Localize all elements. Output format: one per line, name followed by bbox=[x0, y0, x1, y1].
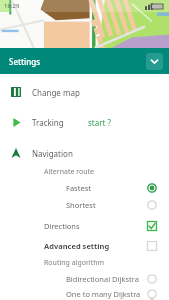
staticText: Tracking bbox=[32, 117, 64, 128]
staticText: Advanced setting bbox=[44, 241, 110, 251]
button[interactable]: Bidirectional Dijkstra bbox=[0, 270, 169, 287]
staticText: 16:29 bbox=[4, 2, 20, 10]
button[interactable]: One to many Dijkstra bbox=[0, 287, 169, 300]
staticText: Change map bbox=[32, 87, 80, 98]
staticText: Shortest bbox=[66, 200, 96, 210]
staticText: Fastest bbox=[66, 183, 91, 193]
button[interactable]: Collapse settings bbox=[146, 53, 163, 70]
button[interactable]: Change map bbox=[0, 80, 169, 104]
staticText: Alternate route bbox=[44, 167, 94, 177]
staticText: Navigation bbox=[32, 148, 73, 159]
button[interactable]: Shortest bbox=[0, 196, 169, 213]
button[interactable]: Fastest bbox=[0, 179, 169, 196]
staticText: Routing algorithm bbox=[44, 258, 105, 268]
staticText: Directions bbox=[44, 221, 80, 231]
button[interactable]: Directions bbox=[0, 217, 169, 235]
button[interactable]: start ? bbox=[88, 117, 111, 128]
button[interactable]: Advanced setting bbox=[0, 237, 169, 255]
staticText: Bidirectional Dijkstra bbox=[66, 274, 139, 284]
staticText: One to many Dijkstra bbox=[66, 289, 141, 299]
button[interactable]: Tracking bbox=[0, 110, 169, 134]
button[interactable]: Navigation bbox=[0, 142, 169, 164]
staticText: Settings bbox=[9, 56, 41, 67]
